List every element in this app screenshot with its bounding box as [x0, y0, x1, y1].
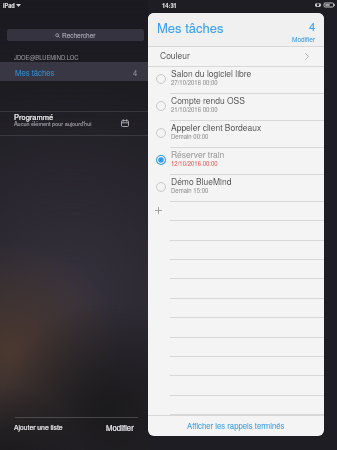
button[interactable]: Rechercher: [7, 29, 144, 41]
staticText: 14:31: [162, 1, 177, 9]
button[interactable]: Compte rendu OSS: [148, 93, 324, 120]
button[interactable]: Afficher les rappels terminés: [148, 415, 324, 435]
button[interactable]: Appeler client Bordeaux: [148, 120, 324, 147]
staticText: Salon du logiciel libre: [171, 67, 252, 79]
button[interactable]: Salon du logiciel libre: [148, 66, 324, 93]
button[interactable]: Réserver train: [148, 147, 324, 174]
staticText: Réserver train: [171, 148, 225, 160]
staticText: Programmé: [14, 111, 54, 122]
staticText: iPad: [3, 2, 15, 10]
other: Programmé: [121, 119, 129, 127]
staticText: 4: [309, 18, 316, 34]
staticText: 27/10/2016 00:00: [171, 78, 218, 87]
button[interactable]: Démo BlueMind: [148, 174, 324, 201]
button[interactable]: Nouveau rappel: [148, 201, 324, 220]
staticText: Demain 00:00: [171, 132, 209, 141]
staticText: 12/10/2016 00:00: [171, 159, 218, 168]
staticText: Modifier: [292, 35, 316, 44]
staticText: Appeler client Bordeaux: [171, 121, 262, 133]
staticText: Demain 15:00: [171, 186, 209, 195]
staticText: Afficher les rappels terminés: [187, 420, 285, 431]
staticText: Modifier: [106, 422, 134, 433]
staticText: Mes tâches: [15, 67, 55, 78]
staticText: 4: [133, 67, 138, 78]
button[interactable]: Programmé: [0, 112, 148, 134]
button[interactable]: Modifier: [98, 418, 148, 436]
staticText: Compte rendu OSS: [171, 94, 245, 106]
button[interactable]: Ajouter une liste: [0, 418, 98, 436]
staticText: Aucun élément pour aujourd'hui: [14, 120, 92, 128]
button[interactable]: Mes tâches: [0, 62, 148, 81]
staticText: Rechercher: [62, 31, 96, 40]
staticText: Couleur: [160, 49, 190, 61]
staticText: JDOE@BLUEMIND.LOC: [14, 53, 79, 61]
button[interactable]: 4: [280, 17, 316, 43]
staticText: 21/10/2016 00:00: [171, 105, 218, 114]
staticText: Démo BlueMind: [171, 175, 232, 187]
other: Verrouillage de l'orientation: [315, 3, 321, 7]
staticText: Mes tâches: [157, 18, 224, 37]
staticText: Ajouter une liste: [14, 422, 63, 432]
button[interactable]: Couleur: [148, 46, 324, 66]
